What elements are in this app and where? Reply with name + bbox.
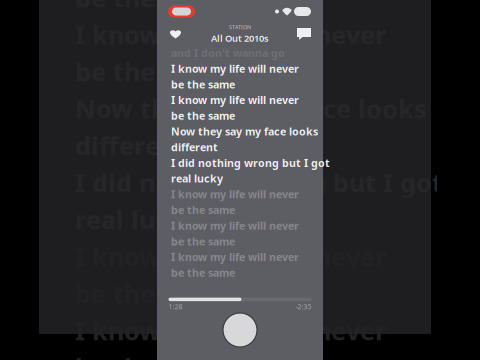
staticText: real lucky	[75, 203, 198, 236]
staticText: I know my life will never	[171, 218, 299, 233]
staticText: and I don't wanna go	[171, 46, 285, 60]
staticText: be the same	[75, 277, 230, 310]
staticText: be the same	[171, 109, 235, 123]
staticText: I know my life will never	[171, 187, 299, 201]
staticText: be the same	[171, 234, 235, 248]
staticText: be the same	[75, 55, 230, 88]
button[interactable]: Love	[165, 24, 186, 43]
staticText: I know my life will never	[75, 314, 386, 347]
staticText: 1:28	[168, 302, 182, 311]
button[interactable]: Play	[223, 313, 257, 347]
staticText: I did nothing wrong but I got	[75, 166, 443, 199]
staticText: Now they say my face looks	[75, 92, 427, 125]
staticText: be the same	[75, 0, 230, 14]
staticText: different	[75, 129, 187, 162]
staticText: be the same	[171, 77, 235, 91]
staticText: I did nothing wrong but I got	[171, 156, 330, 170]
staticText: be the same	[75, 351, 230, 360]
staticText: I know my life will never	[75, 18, 386, 51]
button[interactable]: Playback position	[168, 298, 311, 311]
staticText: different	[171, 140, 218, 154]
staticText: be the same	[171, 266, 235, 280]
staticText: STATION	[229, 24, 251, 31]
staticText: real lucky	[171, 171, 223, 186]
staticText: be the same	[171, 203, 235, 217]
staticText: I know my life will never	[171, 61, 299, 76]
staticText: I know my life will never	[171, 250, 299, 264]
staticText: Now they say my face looks	[171, 124, 318, 138]
button[interactable]: Lyrics	[293, 24, 315, 44]
staticText: -2:35	[295, 302, 311, 311]
staticText: All Out 2010s	[211, 32, 269, 44]
staticText: I know my life will never	[171, 93, 299, 107]
staticText: I know my life will never	[75, 240, 386, 273]
